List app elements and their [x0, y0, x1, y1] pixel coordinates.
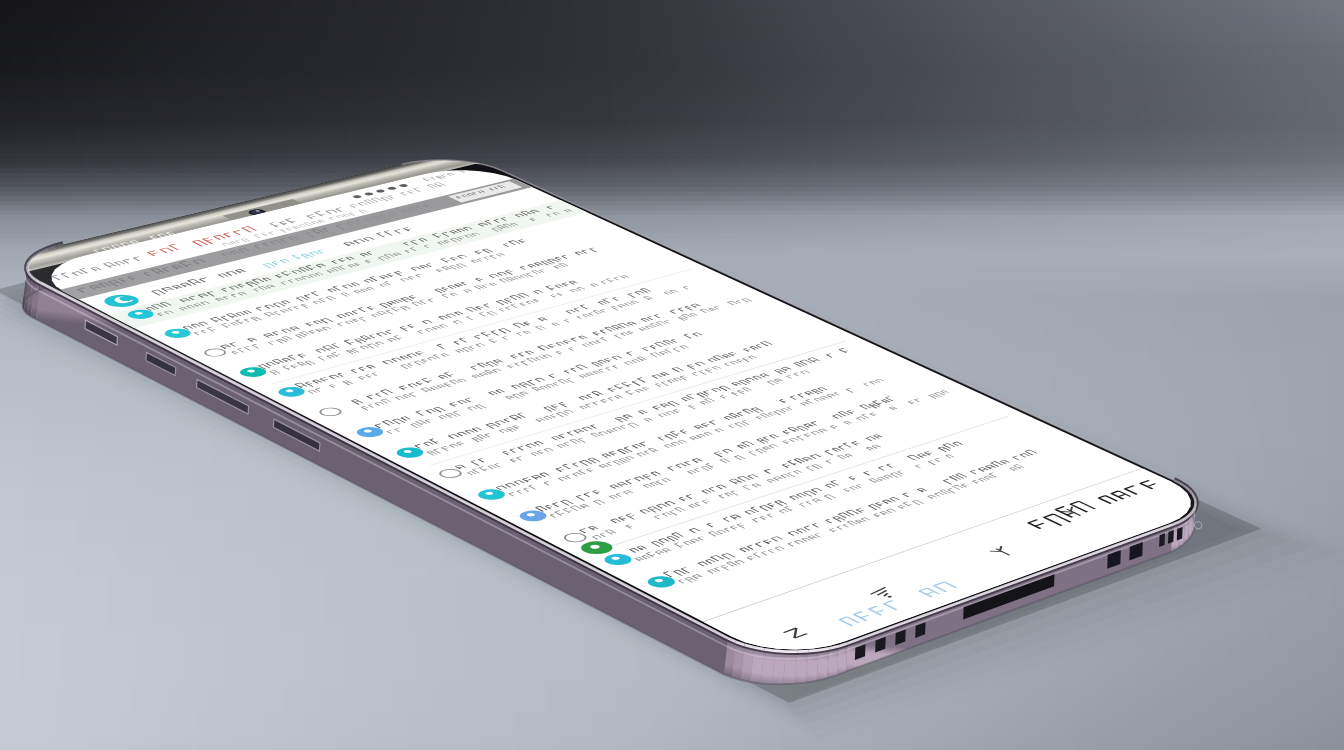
button[interactable]: Smartphone product render [0, 0, 1344, 750]
